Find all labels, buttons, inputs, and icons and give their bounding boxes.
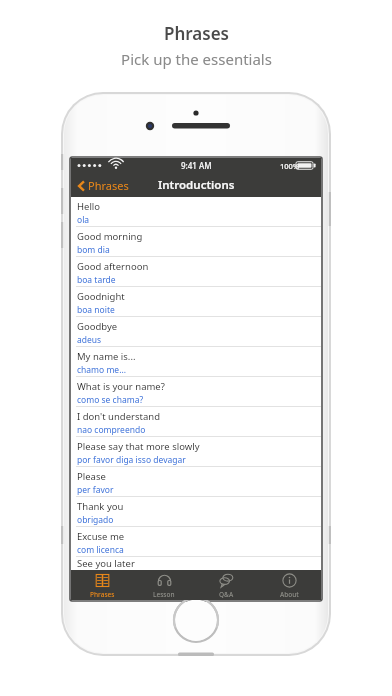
- staticText: What is your name?: [77, 380, 165, 393]
- staticText: Q&A: [219, 590, 234, 599]
- button[interactable]: Thank you: [71, 497, 321, 527]
- staticText: Lesson: [153, 590, 175, 599]
- staticText: Goodnight: [77, 290, 125, 303]
- staticText: adeus: [77, 334, 102, 346]
- button[interactable]: Please: [71, 467, 321, 497]
- staticText: 9:41 AM: [181, 160, 212, 171]
- staticText: I don't understand: [77, 410, 160, 423]
- staticText: Pick up the essentials: [121, 49, 272, 69]
- staticText: boa tarde: [77, 274, 116, 286]
- staticText: Good afternoon: [77, 260, 149, 273]
- staticText: Excuse me: [77, 530, 125, 543]
- staticText: per favor: [77, 484, 114, 496]
- button[interactable]: Please say that more slowly: [71, 437, 321, 467]
- staticText: ola: [77, 214, 90, 226]
- staticText: chamo me...: [77, 364, 126, 376]
- button[interactable]: Phrases: [71, 570, 133, 600]
- staticText: Introductions: [158, 177, 235, 193]
- button[interactable]: See you later: [71, 557, 321, 570]
- button[interactable]: Hello: [71, 197, 321, 227]
- staticText: por favor diga isso devagar: [77, 454, 186, 466]
- staticText: bom dia: [77, 244, 110, 256]
- button[interactable]: Lesson: [133, 570, 195, 600]
- staticText: See you later: [77, 557, 135, 570]
- staticText: 100%: [280, 161, 300, 171]
- staticText: Phrases: [88, 178, 129, 193]
- staticText: Please: [77, 470, 106, 483]
- staticText: boa noite: [77, 304, 115, 316]
- staticText: My name is...: [77, 350, 136, 363]
- button[interactable]: Goodbye: [71, 317, 321, 347]
- staticText: Thank you: [77, 500, 124, 513]
- button[interactable]: Phrases: [76, 175, 131, 196]
- staticText: About: [280, 590, 299, 599]
- button[interactable]: Q&A: [195, 570, 258, 600]
- staticText: como se chama?: [77, 394, 144, 406]
- staticText: Phrases: [90, 590, 115, 599]
- button[interactable]: Goodnight: [71, 287, 321, 317]
- staticText: Goodbye: [77, 320, 118, 333]
- staticText: Please say that more slowly: [77, 440, 200, 453]
- staticText: Good morning: [77, 230, 143, 243]
- button[interactable]: Excuse me: [71, 527, 321, 557]
- button[interactable]: Good morning: [71, 227, 321, 257]
- staticText: com licenca: [77, 544, 124, 556]
- button[interactable]: My name is...: [71, 347, 321, 377]
- staticText: Phrases: [164, 22, 229, 45]
- button[interactable]: I don't understand: [71, 407, 321, 437]
- button[interactable]: What is your name?: [71, 377, 321, 407]
- staticText: nao compreendo: [77, 424, 146, 436]
- button[interactable]: Good afternoon: [71, 257, 321, 287]
- staticText: Hello: [77, 200, 101, 213]
- button[interactable]: About: [258, 570, 321, 600]
- staticText: obrigado: [77, 514, 114, 526]
